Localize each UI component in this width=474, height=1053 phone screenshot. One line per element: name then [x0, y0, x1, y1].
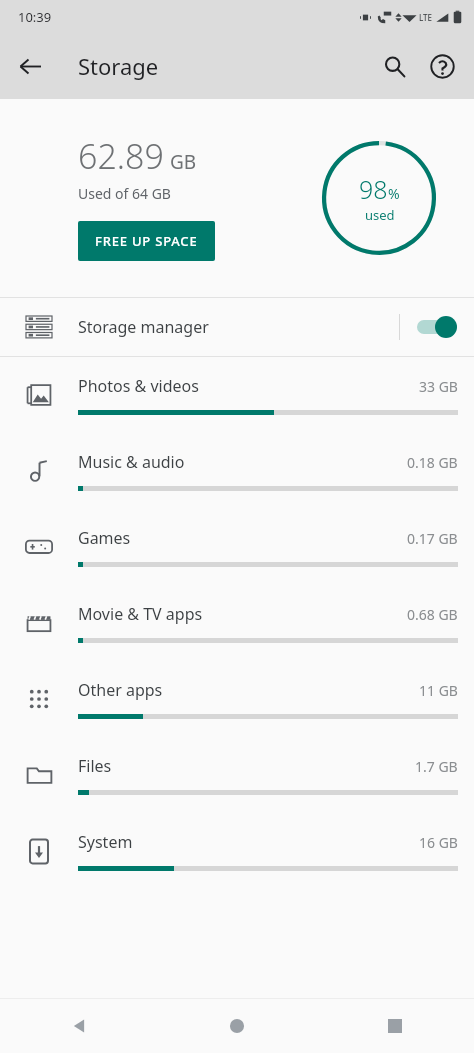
staticText: Used of 64 GB — [78, 184, 171, 203]
staticText: Storage manager — [78, 316, 399, 338]
button[interactable]: Storage manager toggle — [400, 298, 474, 356]
staticText: 98 — [359, 172, 388, 206]
staticText: Music & audio — [78, 451, 407, 473]
staticText: 16 GB — [419, 833, 458, 852]
button[interactable]: Help — [418, 42, 466, 90]
button[interactable]: Storage manager — [0, 298, 474, 356]
staticText: 10:39 — [18, 8, 52, 26]
button[interactable]: FREE UP SPACE — [78, 221, 215, 261]
button[interactable]: Photos & videos — [0, 357, 474, 433]
button[interactable]: Files — [0, 737, 474, 813]
button[interactable]: Back — [0, 999, 158, 1053]
button[interactable]: Search — [370, 42, 418, 90]
button[interactable]: Other apps — [0, 661, 474, 737]
staticText: Games — [78, 527, 407, 549]
staticText: Movie & TV apps — [78, 603, 407, 625]
staticText: Files — [78, 755, 415, 777]
staticText: LTE — [419, 12, 433, 23]
staticText: 0.17 GB — [407, 529, 458, 548]
staticText: Photos & videos — [78, 375, 419, 397]
staticText: System — [78, 831, 419, 853]
button[interactable]: Recents — [316, 999, 474, 1053]
staticText: GB — [170, 149, 197, 175]
button[interactable]: Music & audio — [0, 433, 474, 509]
staticText: 11 GB — [419, 681, 458, 700]
staticText: 33 GB — [419, 377, 458, 396]
button[interactable]: System — [0, 813, 474, 889]
staticText: Other apps — [78, 679, 419, 701]
button[interactable]: Home — [158, 999, 316, 1053]
staticText: 0.68 GB — [407, 605, 458, 624]
staticText: Storage — [78, 51, 159, 81]
staticText: 0.18 GB — [407, 453, 458, 472]
button[interactable]: Movie & TV apps — [0, 585, 474, 661]
button[interactable]: Games — [0, 509, 474, 585]
button[interactable]: Back — [6, 42, 54, 90]
staticText: used — [365, 206, 395, 224]
staticText: FREE UP SPACE — [95, 232, 198, 250]
staticText: 62.89 — [78, 133, 164, 179]
staticText: 1.7 GB — [415, 757, 458, 776]
staticText: % — [388, 184, 400, 203]
